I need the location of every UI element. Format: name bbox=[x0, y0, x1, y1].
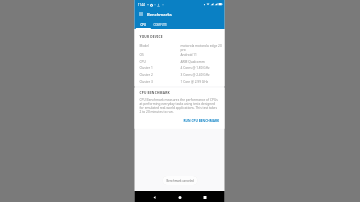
staticText: CPU bbox=[139, 60, 146, 64]
staticText: ARM Qualcomm bbox=[180, 60, 222, 64]
staticText: Cluster 3 bbox=[139, 80, 153, 84]
staticText: RUN CPU BENCHMARK bbox=[183, 119, 219, 123]
staticText: Cluster 1 bbox=[139, 66, 153, 70]
staticText: 4 Cores @ 1.80 GHz bbox=[180, 66, 222, 70]
button[interactable]: Recent apps bbox=[199, 192, 209, 202]
staticText: 11:24 bbox=[138, 3, 145, 7]
staticText: motorola motorola edge 20 pro bbox=[180, 44, 222, 52]
button[interactable]: Open navigation drawer bbox=[136, 9, 145, 18]
staticText: CPU Benchmark measures the performance o… bbox=[139, 98, 218, 114]
staticText: YOUR DEVICE bbox=[139, 35, 163, 39]
button[interactable]: CPU bbox=[135, 20, 150, 29]
staticText: COMPUTE bbox=[153, 23, 167, 27]
staticText: Benchmark canceled bbox=[166, 179, 194, 183]
staticText: Cluster 2 bbox=[139, 73, 153, 77]
staticText: CPU bbox=[140, 23, 146, 27]
staticText: Model bbox=[139, 44, 149, 48]
staticText: 1 Core @ 2.99 GHz bbox=[180, 80, 222, 84]
button[interactable]: COMPUTE bbox=[147, 20, 173, 29]
staticText: 3 Cores @ 2.40 GHz bbox=[180, 73, 222, 77]
button[interactable]: Back bbox=[149, 192, 159, 202]
staticText: CPU BENCHMARK bbox=[139, 91, 170, 95]
staticText: OS bbox=[139, 53, 144, 57]
button[interactable]: Benchmark canceled bbox=[162, 176, 197, 185]
staticText: Benchmarks bbox=[147, 11, 172, 17]
button[interactable]: Home bbox=[174, 192, 184, 202]
staticText: Android 11 bbox=[180, 53, 222, 57]
button[interactable]: RUN CPU BENCHMARK bbox=[134, 119, 224, 123]
